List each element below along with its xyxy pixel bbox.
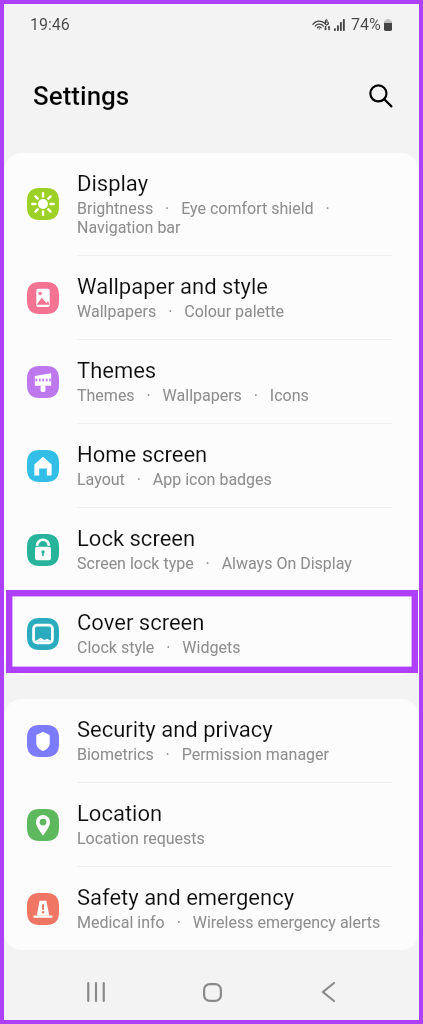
staticText: Security and privacy — [77, 717, 273, 743]
button[interactable]: Safety and emergency — [4, 867, 419, 950]
button[interactable]: Back — [299, 963, 357, 1021]
staticText: Themes · Wallpapers · Icons — [77, 386, 309, 405]
staticText: Home screen — [77, 442, 208, 468]
button[interactable]: Themes — [4, 340, 419, 423]
staticText: Layout · App icon badges — [77, 470, 272, 489]
staticText: Lock screen — [77, 526, 196, 552]
staticText: Screen lock type · Always On Display — [77, 554, 352, 573]
staticText: Wallpapers · Colour palette — [77, 302, 285, 321]
button[interactable]: Location — [4, 783, 419, 866]
staticText: Location requests — [77, 829, 205, 848]
staticText: Medical info · Wireless emergency alerts — [77, 913, 381, 932]
staticText: 19:46 — [30, 15, 70, 34]
staticText: Biometrics · Permission manager — [77, 745, 329, 764]
staticText: Clock style · Widgets — [77, 638, 241, 657]
button[interactable]: Home screen — [4, 424, 419, 507]
button[interactable]: Lock screen — [4, 508, 419, 591]
button[interactable]: Display — [4, 153, 419, 255]
staticText: 74% — [351, 15, 381, 34]
staticText: Location — [77, 801, 163, 827]
button[interactable]: Security and privacy — [4, 699, 419, 782]
button[interactable]: Cover screen — [4, 592, 419, 675]
button[interactable]: Wallpaper and style — [4, 256, 419, 339]
button[interactable]: Recents — [67, 963, 125, 1021]
staticText: Settings — [33, 81, 130, 111]
staticText: Brightness · Eye comfort shield · Naviga… — [77, 199, 401, 237]
button[interactable]: Search — [359, 74, 403, 118]
staticText: Themes — [77, 358, 157, 384]
button[interactable]: Home — [183, 963, 241, 1021]
staticText: Safety and emergency — [77, 885, 295, 911]
staticText: Cover screen — [77, 610, 205, 636]
staticText: Display — [77, 171, 149, 197]
staticText: Wallpaper and style — [77, 274, 269, 300]
